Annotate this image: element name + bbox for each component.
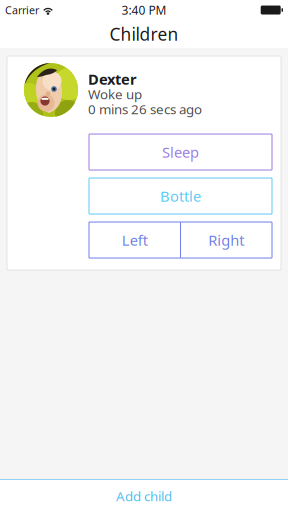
- staticText: Bottle: [160, 186, 201, 206]
- staticText: Sleep: [162, 142, 199, 162]
- button[interactable]: Right: [180, 222, 272, 258]
- staticText: Carrier: [5, 3, 39, 17]
- staticText: Woke up: [88, 85, 142, 103]
- staticText: Dexter: [88, 69, 137, 89]
- button[interactable]: Bottle: [89, 178, 272, 214]
- button[interactable]: Sleep: [89, 134, 272, 170]
- staticText: Right: [208, 230, 244, 250]
- staticText: Left: [122, 230, 148, 250]
- staticText: 3:40 PM: [121, 2, 166, 18]
- staticText: 0 mins 26 secs ago: [88, 100, 202, 118]
- button[interactable]: Left: [89, 222, 180, 258]
- button[interactable]: Add child: [0, 479, 288, 512]
- staticText: Add child: [116, 487, 172, 505]
- staticText: Children: [109, 22, 178, 45]
